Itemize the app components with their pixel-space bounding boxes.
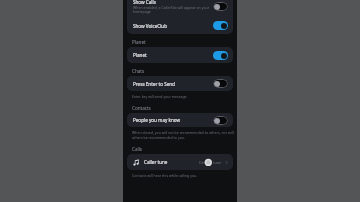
button[interactable]: Caller tune	[127, 154, 233, 170]
other: Open caller tune	[224, 160, 229, 165]
button[interactable]: Show VoiceClub	[127, 17, 233, 34]
staticText: Chats	[132, 68, 145, 74]
button[interactable]: Planet	[127, 47, 233, 63]
staticText: Press Enter to Send	[133, 81, 210, 87]
staticText: Contacts	[132, 105, 151, 111]
staticText: People you may know	[133, 117, 210, 123]
staticText: Show VoiceClub	[133, 23, 210, 29]
staticText: When closed, you will not be recommended…	[132, 130, 234, 140]
staticText: Default tune	[199, 160, 222, 165]
staticText: Show Calls	[133, 0, 156, 5]
button[interactable]: Press Enter to Send	[127, 76, 233, 91]
button[interactable]: Show Calls	[127, 0, 233, 16]
staticText: Calls	[132, 146, 143, 152]
staticText: Planet	[132, 39, 146, 45]
staticText: Enter key will send your message.	[132, 94, 188, 99]
staticText: Contacts will hear this while calling yo…	[132, 173, 198, 178]
staticText: When enabled, a CallerTab will appear on…	[133, 5, 217, 14]
staticText: Planet	[133, 52, 210, 58]
staticText: Caller tune	[144, 159, 168, 165]
button[interactable]: People you may know	[127, 113, 233, 127]
